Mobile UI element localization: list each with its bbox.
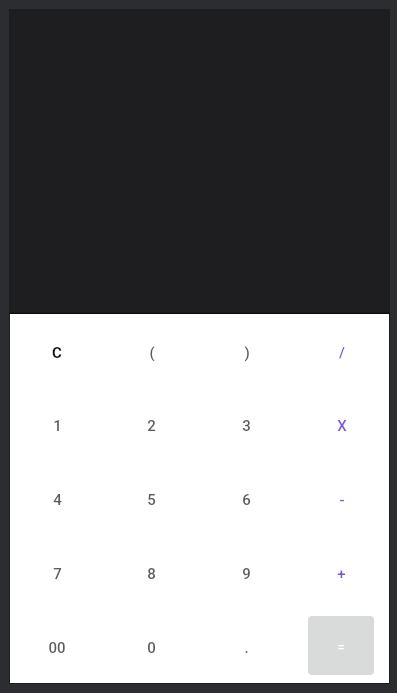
button[interactable]: Five: [104, 461, 199, 535]
staticText: 3: [242, 417, 251, 435]
button[interactable]: Two: [104, 387, 199, 461]
staticText: 4: [53, 491, 62, 509]
button[interactable]: Zero: [104, 609, 199, 683]
staticText: X: [337, 417, 347, 435]
button[interactable]: Four: [10, 461, 104, 535]
button[interactable]: Three: [199, 387, 294, 461]
staticText: 7: [53, 565, 62, 583]
button[interactable]: Multiply: [294, 387, 389, 461]
button[interactable]: Plus: [294, 535, 389, 609]
button[interactable]: Clear: [10, 314, 104, 387]
staticText: 00: [48, 639, 66, 657]
staticText: ): [244, 344, 250, 362]
staticText: 6: [242, 491, 251, 509]
button[interactable]: Divide: [294, 314, 389, 387]
staticText: /: [339, 344, 345, 362]
button[interactable]: Seven: [10, 535, 104, 609]
button[interactable]: Close bracket: [199, 314, 294, 387]
button[interactable]: Minus: [294, 461, 389, 535]
staticText: 8: [147, 565, 156, 583]
staticText: (: [149, 344, 155, 362]
staticText: -: [339, 491, 345, 509]
staticText: .: [244, 639, 249, 657]
button[interactable]: Six: [199, 461, 294, 535]
staticText: +: [337, 565, 346, 583]
staticText: 0: [147, 639, 156, 657]
staticText: 2: [147, 417, 156, 435]
button[interactable]: One: [10, 387, 104, 461]
staticText: C: [52, 344, 62, 362]
staticText: 1: [53, 417, 62, 435]
staticText: 5: [147, 491, 156, 509]
staticText: =: [337, 640, 345, 655]
button[interactable]: Open bracket: [104, 314, 199, 387]
button[interactable]: Nine: [199, 535, 294, 609]
button[interactable]: Eight: [104, 535, 199, 609]
button[interactable]: Double zero: [10, 609, 104, 683]
staticText: 9: [242, 565, 251, 583]
